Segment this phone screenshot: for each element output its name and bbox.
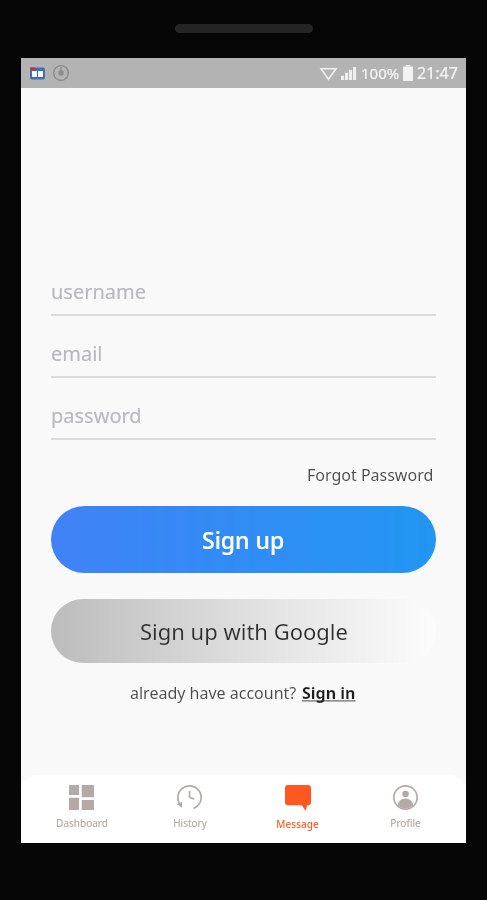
staticText: History xyxy=(173,816,207,830)
button[interactable]: Dashboard xyxy=(34,775,129,843)
staticText: already have account? xyxy=(130,682,301,704)
staticText: 21:47 xyxy=(417,62,458,84)
button[interactable]: email xyxy=(51,340,436,378)
staticText: Sign up xyxy=(202,524,285,555)
staticText: 100% xyxy=(361,63,400,83)
button[interactable]: Message xyxy=(250,775,345,843)
button[interactable]: Sign up with Google xyxy=(51,599,436,663)
button[interactable]: Sign up xyxy=(51,506,436,573)
button[interactable]: username xyxy=(51,278,436,316)
staticText: password xyxy=(51,402,142,429)
staticText: Message xyxy=(276,817,319,831)
staticText: username xyxy=(51,278,147,305)
staticText: Sign up with Google xyxy=(140,616,348,646)
staticText: Profile xyxy=(390,816,421,830)
staticText: Sign in xyxy=(302,682,356,704)
button[interactable]: Sign in xyxy=(301,680,357,706)
staticText: Dashboard xyxy=(56,816,108,830)
button[interactable]: Profile xyxy=(358,775,453,843)
button[interactable]: Forgot Password xyxy=(305,461,436,489)
staticText: Forgot Password xyxy=(307,464,434,486)
staticText: email xyxy=(51,340,103,367)
button[interactable]: password xyxy=(51,402,436,440)
button[interactable]: History xyxy=(142,775,237,843)
